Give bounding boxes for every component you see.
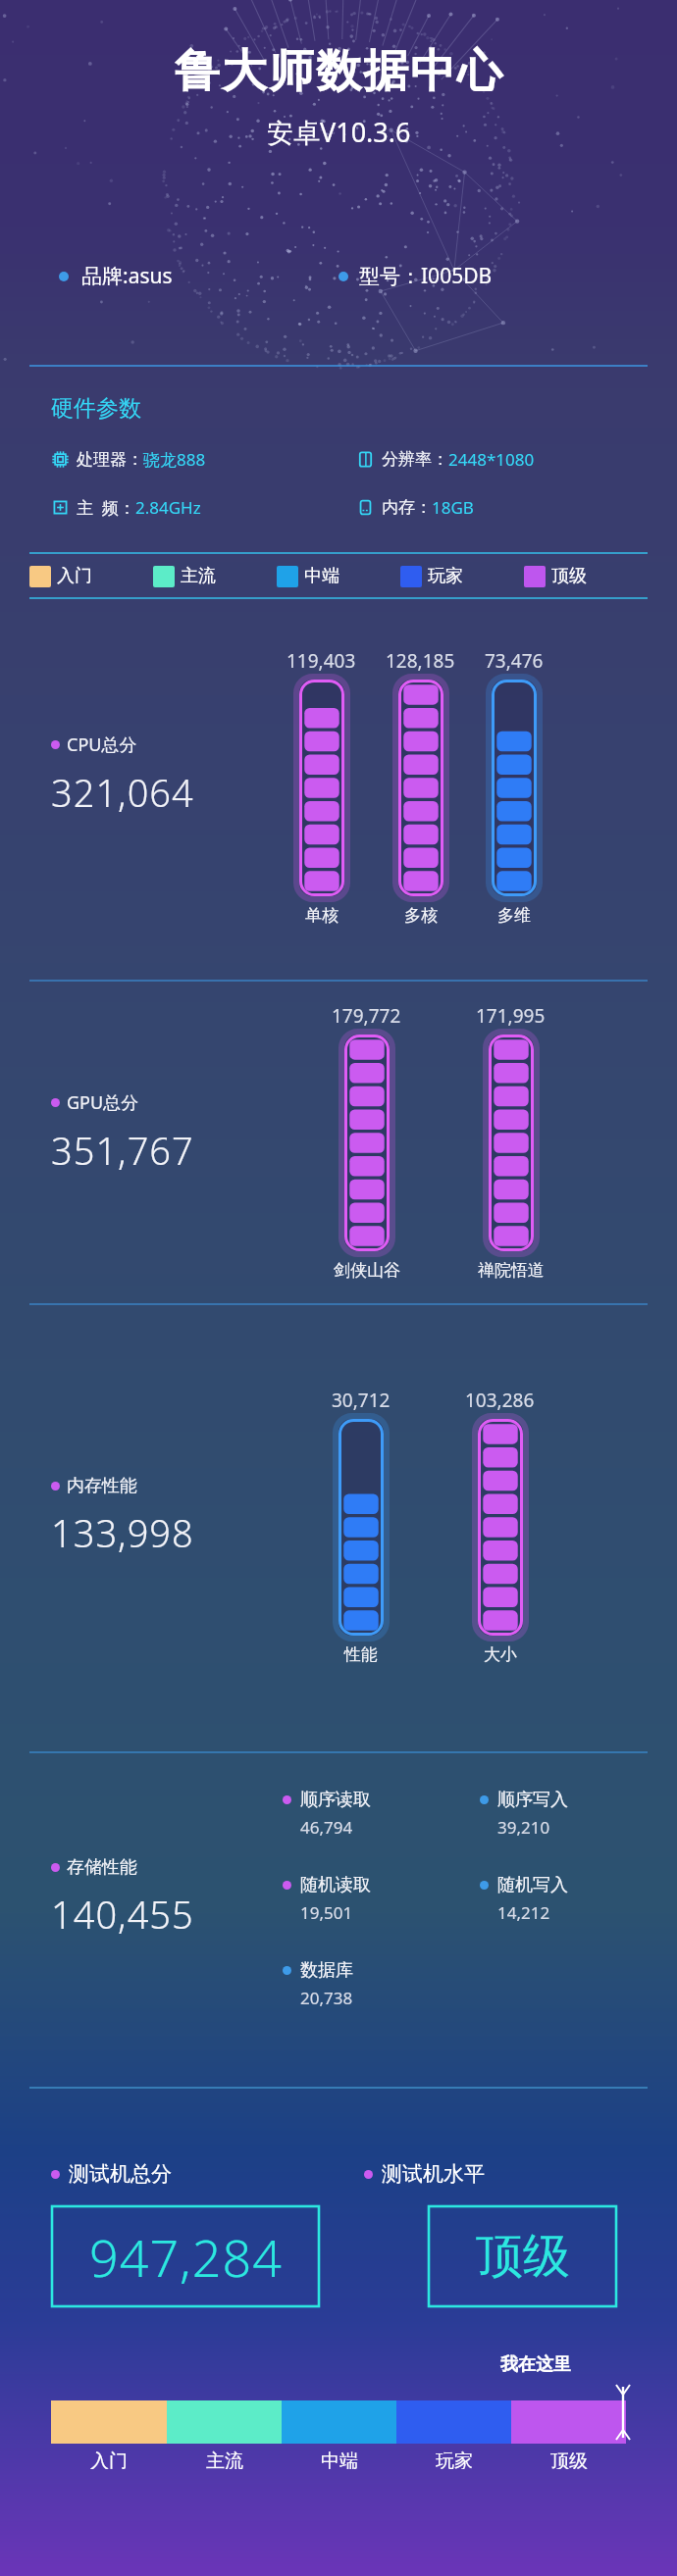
staticText: 顶级 [551,565,587,587]
staticText: 骁龙888 [143,448,206,471]
staticText: 大小 [484,1644,517,1665]
staticText: 321,064 [51,767,194,818]
staticText: 133,998 [51,1507,194,1558]
button[interactable]: 中端 [277,565,400,587]
other: 我在这里 [614,2383,632,2461]
staticText: 主流 [206,2450,243,2469]
staticText: 128,185 [386,648,455,674]
button[interactable]: 947,284 [52,2206,319,2306]
button[interactable]: 顶级 [429,2206,616,2306]
staticText: 39,210 [497,1816,550,1839]
staticText: 171,995 [476,1003,546,1029]
button[interactable]: 主 频： [51,496,356,519]
button[interactable]: 型号：I005DB [338,262,677,290]
staticText: 入门 [90,2450,128,2469]
staticText: 测试机水平 [382,2161,485,2187]
button[interactable]: 随机写入 [480,1874,677,1924]
staticText: 103,286 [465,1388,535,1413]
button[interactable] [396,2400,511,2444]
button[interactable]: 随机读取 [283,1874,480,1924]
button[interactable] [167,2400,282,2444]
button[interactable] [282,2400,396,2444]
staticText: 351,767 [51,1125,194,1176]
staticText: GPU总分 [67,1090,139,1115]
staticText: 处理器： [77,449,143,470]
button[interactable]: 分辨率： [356,448,677,471]
staticText: 14,212 [497,1901,550,1924]
button[interactable]: 入门 [29,565,153,587]
staticText: 随机写入 [497,1874,568,1896]
staticText: 分辨率： [382,449,448,470]
staticText: 多核 [404,905,438,926]
staticText: 18GB [432,496,474,519]
button[interactable] [511,2400,626,2444]
staticText: 顺序读取 [300,1789,371,1811]
staticText: 46,794 [300,1816,353,1839]
staticText: 20,738 [300,1987,353,2009]
staticText: 2.84GHz [135,496,201,519]
button[interactable]: 品牌:asus [59,262,338,290]
button[interactable]: 顺序读取 [283,1789,480,1839]
staticText: 19,501 [300,1901,353,1924]
staticText: 安卓V10.3.6 [267,114,411,150]
staticText: 179,772 [332,1003,401,1029]
staticText: 顶级 [476,2227,570,2286]
button[interactable]: 顺序写入 [480,1789,677,1839]
staticText: 140,455 [51,1889,194,1940]
staticText: 鲁大师数据中心 [174,43,503,100]
button[interactable]: 顶级 [524,565,648,587]
staticText: 主流 [181,565,216,587]
staticText: 内存性能 [67,1475,137,1497]
staticText: 顶级 [550,2450,588,2469]
staticText: 存储性能 [67,1856,137,1879]
staticText: 性能 [344,1644,378,1665]
button[interactable]: 内存： [356,496,677,519]
staticText: 顺序写入 [497,1789,568,1811]
staticText: 玩家 [436,2450,473,2469]
staticText: CPU总分 [67,732,137,757]
staticText: 品牌:asus [81,262,173,290]
staticText: 数据库 [300,1959,353,1982]
button[interactable]: 数据库 [283,1959,480,2009]
staticText: 硬件参数 [51,394,141,423]
staticText: 119,403 [286,648,356,674]
button[interactable]: 主流 [153,565,277,587]
button[interactable]: 处理器： [51,448,356,471]
staticText: 剑侠山谷 [334,1260,400,1281]
staticText: 玩家 [428,565,463,587]
staticText: 单核 [305,905,338,926]
staticText: 禅院悟道 [478,1260,545,1281]
staticText: 多维 [497,905,531,926]
button[interactable] [51,2400,167,2444]
staticText: 型号：I005DB [359,262,493,290]
button[interactable]: 玩家 [400,565,524,587]
staticText: 30,712 [332,1388,391,1413]
staticText: 中端 [304,565,339,587]
staticText: 73,476 [485,648,544,674]
staticText: 2448*1080 [448,448,535,471]
staticText: 入门 [57,565,92,587]
staticText: 947,284 [89,2222,283,2292]
staticText: 内存： [382,497,432,518]
staticText: 中端 [321,2450,358,2469]
staticText: 我在这里 [500,2353,571,2376]
staticText: 测试机总分 [69,2161,172,2187]
staticText: 主 频： [77,496,135,519]
staticText: 随机读取 [300,1874,371,1896]
